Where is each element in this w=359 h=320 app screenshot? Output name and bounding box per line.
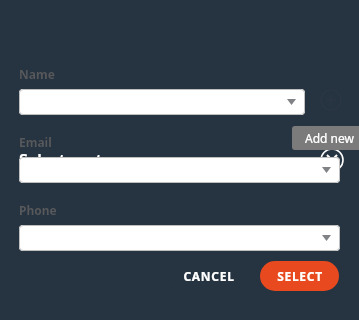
staticText: Add new xyxy=(305,130,354,146)
button[interactable]: CANCEL xyxy=(167,261,250,290)
button[interactable] xyxy=(19,89,305,115)
staticText: Select customer xyxy=(19,149,144,171)
staticText: SELECT xyxy=(277,268,323,284)
button[interactable]: SELECT xyxy=(260,261,339,291)
staticText: Name xyxy=(19,66,55,82)
staticText: Phone xyxy=(19,202,57,218)
button[interactable]: Close xyxy=(319,147,345,173)
staticText: Email xyxy=(19,134,52,150)
staticText: CANCEL xyxy=(183,268,235,284)
button[interactable] xyxy=(19,225,340,251)
button[interactable] xyxy=(19,157,340,183)
